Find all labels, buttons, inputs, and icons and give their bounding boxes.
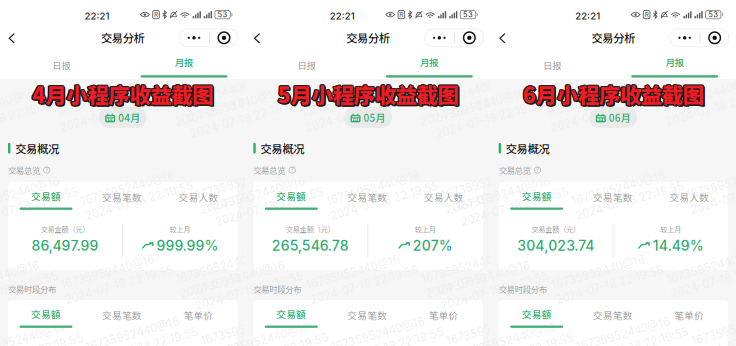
staticText: 笔单价 — [674, 308, 704, 322]
staticText: 05月 — [363, 110, 385, 125]
button[interactable]: 笔单价 — [405, 308, 482, 330]
button[interactable]: 日报 — [245, 51, 368, 79]
button[interactable]: 月报 — [613, 51, 736, 79]
staticText: 16735952440@16 — [170, 84, 267, 98]
staticText: 交易时段分布 — [499, 283, 547, 295]
staticText: 16735952440@16 — [420, 256, 517, 270]
staticText: 交易时段分布 — [253, 283, 301, 295]
button[interactable]: 交易笔数 — [84, 308, 160, 330]
button[interactable]: 月报 — [122, 51, 245, 79]
staticText: 53 — [218, 10, 228, 19]
staticText: 16735952440@16 — [456, 184, 553, 198]
staticText: 2024-07-18 22:19:55 — [55, 105, 167, 119]
staticText: 5月小程序收益截图 — [277, 80, 458, 111]
staticText: 2024-07-18 22:19:55 — [210, 199, 322, 213]
staticText: 5月小程序收益截图 — [279, 80, 460, 110]
staticText: 交易笔数 — [593, 190, 633, 204]
button[interactable]: 交易笔数 — [329, 308, 405, 330]
staticText: 交易时段分布 — [8, 283, 56, 295]
staticText: 较上月 — [415, 224, 436, 234]
staticText: 16735952440@16 — [300, 90, 397, 104]
staticText: 2024-07-18 22:19:55 — [190, 283, 302, 297]
staticText: 2024-07-18 22:19:55 — [436, 283, 548, 297]
staticText: 交易概况 — [260, 140, 304, 156]
staticText: 16735952440@16 — [0, 330, 67, 344]
button[interactable]: 关闭 — [700, 29, 729, 47]
staticText: 4月小程序收益截图 — [32, 79, 213, 109]
staticText: 304,023.74 — [517, 237, 594, 254]
staticText: 4月小程序收益截图 — [31, 79, 212, 110]
button[interactable]: 返回 — [491, 26, 514, 51]
staticText: 较上月 — [660, 224, 681, 234]
button[interactable]: 交易笔数 — [575, 190, 651, 212]
staticText: 16735952440@16 — [691, 318, 736, 332]
staticText: 6月小程序收益截图 — [525, 80, 706, 110]
button[interactable]: 返回 — [245, 26, 269, 51]
button[interactable]: 更多 — [179, 29, 209, 47]
staticText: 22:21 — [84, 10, 109, 22]
staticText: 日报 — [52, 58, 70, 72]
button[interactable]: 更多 — [424, 29, 454, 47]
staticText: 2024-07-18 22:19:55 — [325, 193, 437, 207]
button[interactable]: 日报 — [491, 51, 613, 79]
staticText: 53 — [708, 10, 718, 19]
staticText: 2024-07-18 22:19:55 — [195, 187, 307, 201]
button[interactable]: 交易笔数 — [84, 190, 160, 212]
staticText: 16735952440@16 — [571, 178, 668, 192]
staticText: 交易概况 — [15, 140, 59, 156]
staticText: 2024-07-18 22:19:55 — [330, 339, 442, 346]
button[interactable]: 交易人数 — [405, 190, 482, 212]
staticText: 4月小程序收益截图 — [33, 78, 214, 109]
button[interactable]: 交易額 — [499, 190, 575, 212]
button[interactable]: 笔单价 — [160, 308, 237, 330]
button[interactable]: 交易額 — [499, 308, 575, 330]
staticText: 2024-07-18 22:19:55 — [0, 199, 77, 213]
staticText: 2024-07-18 22:19:55 — [691, 333, 736, 346]
button[interactable]: 交易額 — [8, 308, 84, 330]
button[interactable]: 关闭 — [455, 29, 483, 47]
staticText: 交易笔数 — [347, 190, 387, 204]
staticText: 交易分析 — [591, 29, 635, 46]
button[interactable]: 关闭 — [210, 29, 238, 47]
button[interactable]: 日报 — [0, 51, 122, 79]
staticText: 22:21 — [330, 10, 355, 22]
staticText: 2024-07-18 22:19:55 — [440, 187, 552, 201]
button[interactable]: 返回 — [0, 26, 23, 51]
staticText: 6月小程序收益截图 — [523, 79, 704, 109]
staticText: ? — [291, 166, 294, 174]
staticText: 笔单价 — [183, 308, 213, 322]
staticText: 5月小程序收益截图 — [279, 79, 460, 109]
button[interactable]: 交易笔数 — [575, 308, 651, 330]
staticText: 2024-07-18 22:19:55 — [661, 99, 736, 113]
button[interactable]: 笔单价 — [651, 308, 728, 330]
button[interactable]: 交易人数 — [160, 190, 237, 212]
staticText: ? — [45, 166, 48, 174]
staticText: 5月小程序收益截图 — [276, 79, 457, 109]
staticText: 2024-07-18 22:19:55 — [445, 333, 557, 346]
button[interactable]: 月报 — [368, 51, 490, 79]
button[interactable]: 交易人数 — [651, 190, 728, 212]
button[interactable]: 交易額 — [253, 190, 329, 212]
staticText: 2024-07-18 22:19:55 — [85, 339, 197, 346]
staticText: 交易人数 — [669, 190, 709, 204]
staticText: R — [399, 11, 403, 18]
staticText: 16735952440@16 — [175, 256, 272, 270]
staticText: 笔单价 — [429, 308, 459, 322]
staticText: 16735952440@16 — [440, 172, 537, 186]
staticText: 207% — [413, 237, 453, 254]
staticText: 16735952440@16 — [686, 172, 736, 186]
button[interactable]: 交易額 — [8, 190, 84, 212]
staticText: 86,497.99 — [31, 237, 98, 254]
staticText: 4月小程序收益截图 — [33, 79, 214, 109]
staticText: 16735952440@16 — [666, 256, 736, 270]
button[interactable]: 交易額 — [253, 308, 329, 330]
button[interactable]: 更多 — [670, 29, 700, 47]
staticText: 2024-07-18 22:19:55 — [546, 105, 658, 119]
button[interactable]: 交易笔数 — [329, 190, 405, 212]
staticText: 5月小程序收益截图 — [277, 79, 458, 110]
